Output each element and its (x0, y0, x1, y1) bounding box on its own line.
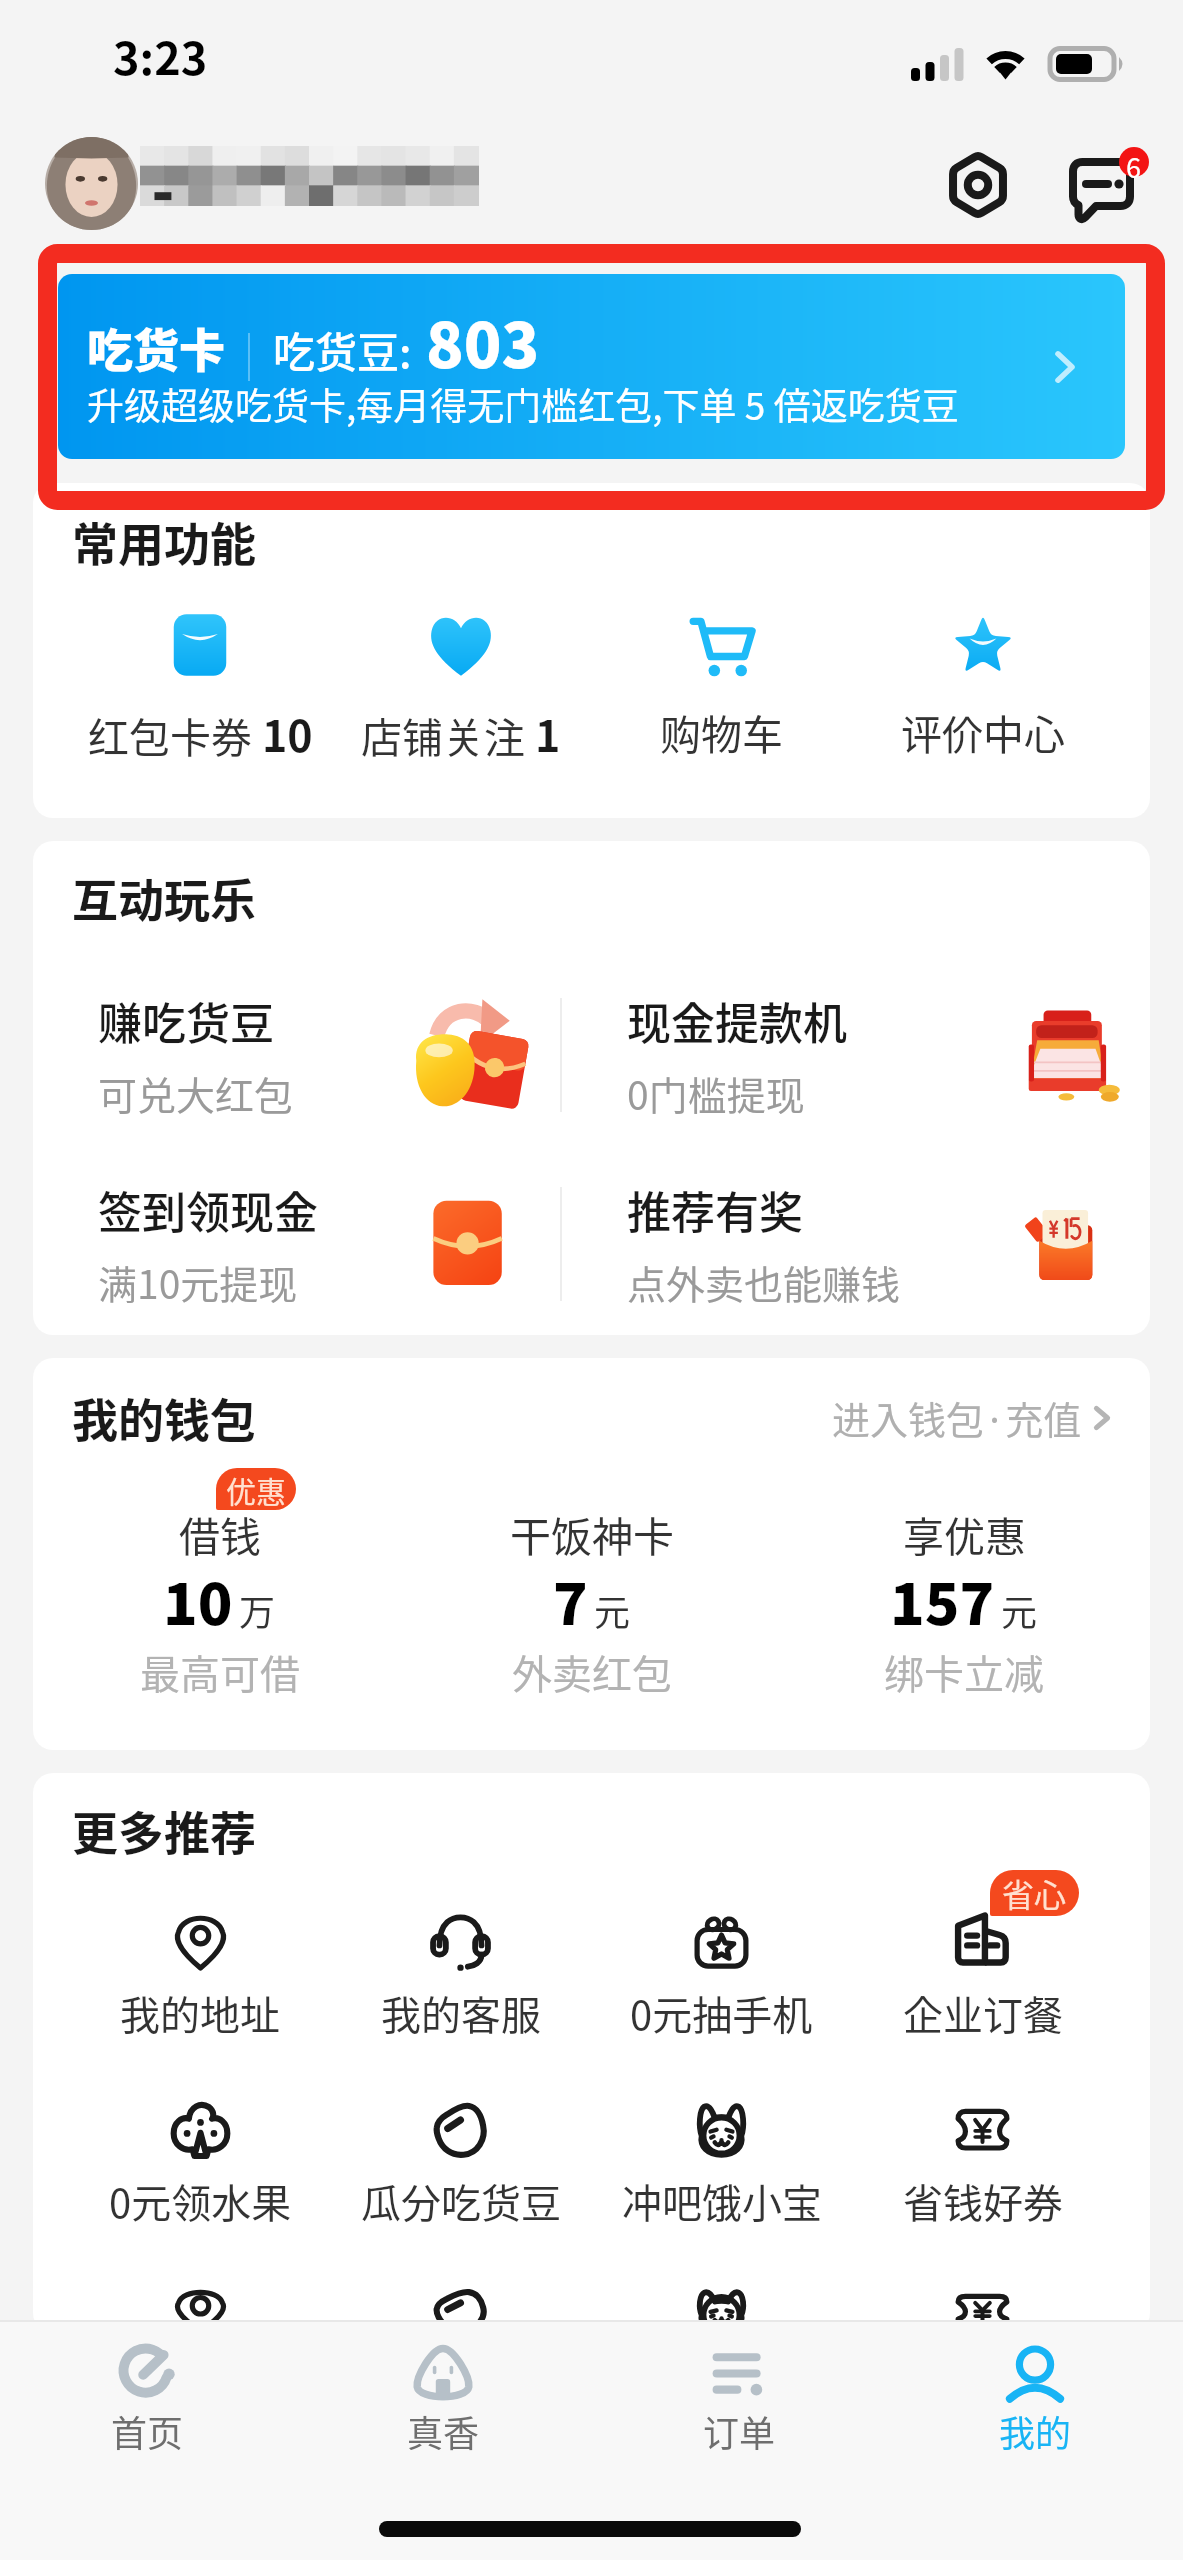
staticText: 我的钱包 (72, 1384, 256, 1451)
staticText: 推荐有奖 (627, 1178, 803, 1242)
button[interactable]: Messages (1058, 140, 1148, 230)
button[interactable] (70, 2286, 330, 2333)
staticText: 6 (1126, 147, 1141, 186)
button[interactable]: 订单 (591, 2343, 887, 2457)
button[interactable]: 购物车 (591, 613, 852, 761)
staticText: 点外卖也能赚钱 (627, 1254, 901, 1310)
staticText: 10 (163, 1559, 233, 1627)
staticText: 10 (262, 702, 313, 764)
staticText: 省钱好券 (903, 2172, 1063, 2230)
button[interactable]: 瓜分吃货豆 (330, 2098, 591, 2230)
staticText: 0门槛提现 (627, 1065, 805, 1121)
button[interactable]: 店铺关注 (330, 613, 591, 764)
staticText: 吃货豆: (273, 319, 412, 380)
button[interactable] (852, 2286, 1113, 2333)
button[interactable]: 推荐有奖 (562, 1153, 1150, 1335)
button[interactable]: 借钱 (33, 1475, 406, 1701)
staticText: 瓜分吃货豆 (361, 2172, 561, 2230)
staticText: 赚吃货豆 (98, 989, 274, 1053)
staticText: 更多推荐 (72, 1797, 256, 1864)
button[interactable]: 冲吧饿小宝 (591, 2098, 852, 2230)
staticText: 享优惠 (903, 1504, 1026, 1563)
button[interactable]: Settings (937, 144, 1018, 225)
staticText: 购物车 (660, 702, 783, 761)
staticText: 157 (890, 1559, 995, 1627)
staticText: 803 (426, 296, 540, 386)
staticText: 满10元提现 (98, 1254, 298, 1310)
button[interactable]: 真香 (295, 2343, 591, 2457)
button[interactable]: 我的地址 (70, 1910, 330, 2042)
staticText: 真香 (407, 2405, 480, 2457)
staticText: 可兑大红包 (98, 1065, 294, 1121)
staticText: 我的客服 (381, 1984, 541, 2042)
staticText: 进入钱包·充值 (832, 1390, 1082, 1445)
staticText: 首页 (111, 2405, 184, 2457)
staticText: 万 (239, 1584, 276, 1636)
button[interactable]: 0元抽手机 (591, 1910, 852, 2042)
staticText: 互动玩乐 (72, 864, 256, 931)
staticText: 吃货卡 (87, 314, 225, 381)
staticText: 7 (553, 1559, 588, 1627)
button[interactable]: 吃货卡 (58, 274, 1125, 459)
staticText: 元 (594, 1584, 631, 1636)
button[interactable] (330, 2286, 591, 2333)
staticText: 1 (535, 702, 561, 764)
button[interactable]: 享优惠 (778, 1475, 1150, 1701)
staticText: 最高可借 (140, 1643, 300, 1701)
button[interactable]: 0元领水果 (70, 2098, 330, 2230)
button[interactable]: 赚吃货豆 (33, 956, 560, 1153)
staticText: 冲吧饿小宝 (622, 2172, 822, 2230)
staticText: 借钱 (179, 1504, 261, 1563)
staticText: 评价中心 (901, 702, 1065, 761)
staticText: 干饭神卡 (510, 1504, 674, 1563)
staticText: 签到领现金 (98, 1178, 318, 1242)
staticText: 外卖红包 (512, 1643, 672, 1701)
staticText: 元 (1001, 1584, 1038, 1636)
staticText: 企业订餐 (903, 1984, 1063, 2042)
button[interactable]: 我的客服 (330, 1910, 591, 2042)
button[interactable]: Profile avatar (45, 137, 138, 230)
staticText: 常用功能 (72, 508, 256, 575)
button[interactable]: 省钱好券 (852, 2098, 1113, 2230)
staticText: 红包卡券 (88, 705, 262, 764)
staticText: 升级超级吃货卡,每月得无门槛红包,下单 5 倍返吃货豆 (87, 377, 959, 431)
staticText: 订单 (703, 2405, 776, 2457)
staticText: 我的 (999, 2405, 1072, 2457)
staticText: 现金提款机 (627, 989, 847, 1053)
staticText: 省心 (1002, 1870, 1067, 1916)
button[interactable]: 进入钱包·充值 (832, 1390, 1122, 1445)
staticText: 绑卡立减 (884, 1643, 1044, 1701)
button[interactable]: 评价中心 (852, 613, 1113, 761)
staticText: 0元领水果 (109, 2172, 292, 2230)
button[interactable]: 签到领现金 (33, 1153, 560, 1335)
button[interactable]: 首页 (0, 2343, 295, 2457)
staticText: 店铺关注 (361, 705, 535, 764)
button[interactable]: 企业订餐 (852, 1910, 1113, 2042)
button[interactable]: 现金提款机 (562, 956, 1150, 1153)
staticText: 0元抽手机 (630, 1984, 813, 2042)
button[interactable]: 我的 (887, 2343, 1183, 2457)
button[interactable] (591, 2286, 852, 2333)
staticText: 3:23 (113, 23, 208, 88)
staticText: 我的地址 (120, 1984, 280, 2042)
button[interactable]: 红包卡券 (70, 613, 330, 764)
staticText: 优惠 (226, 1468, 286, 1510)
button[interactable]: 干饭神卡 (406, 1475, 778, 1701)
